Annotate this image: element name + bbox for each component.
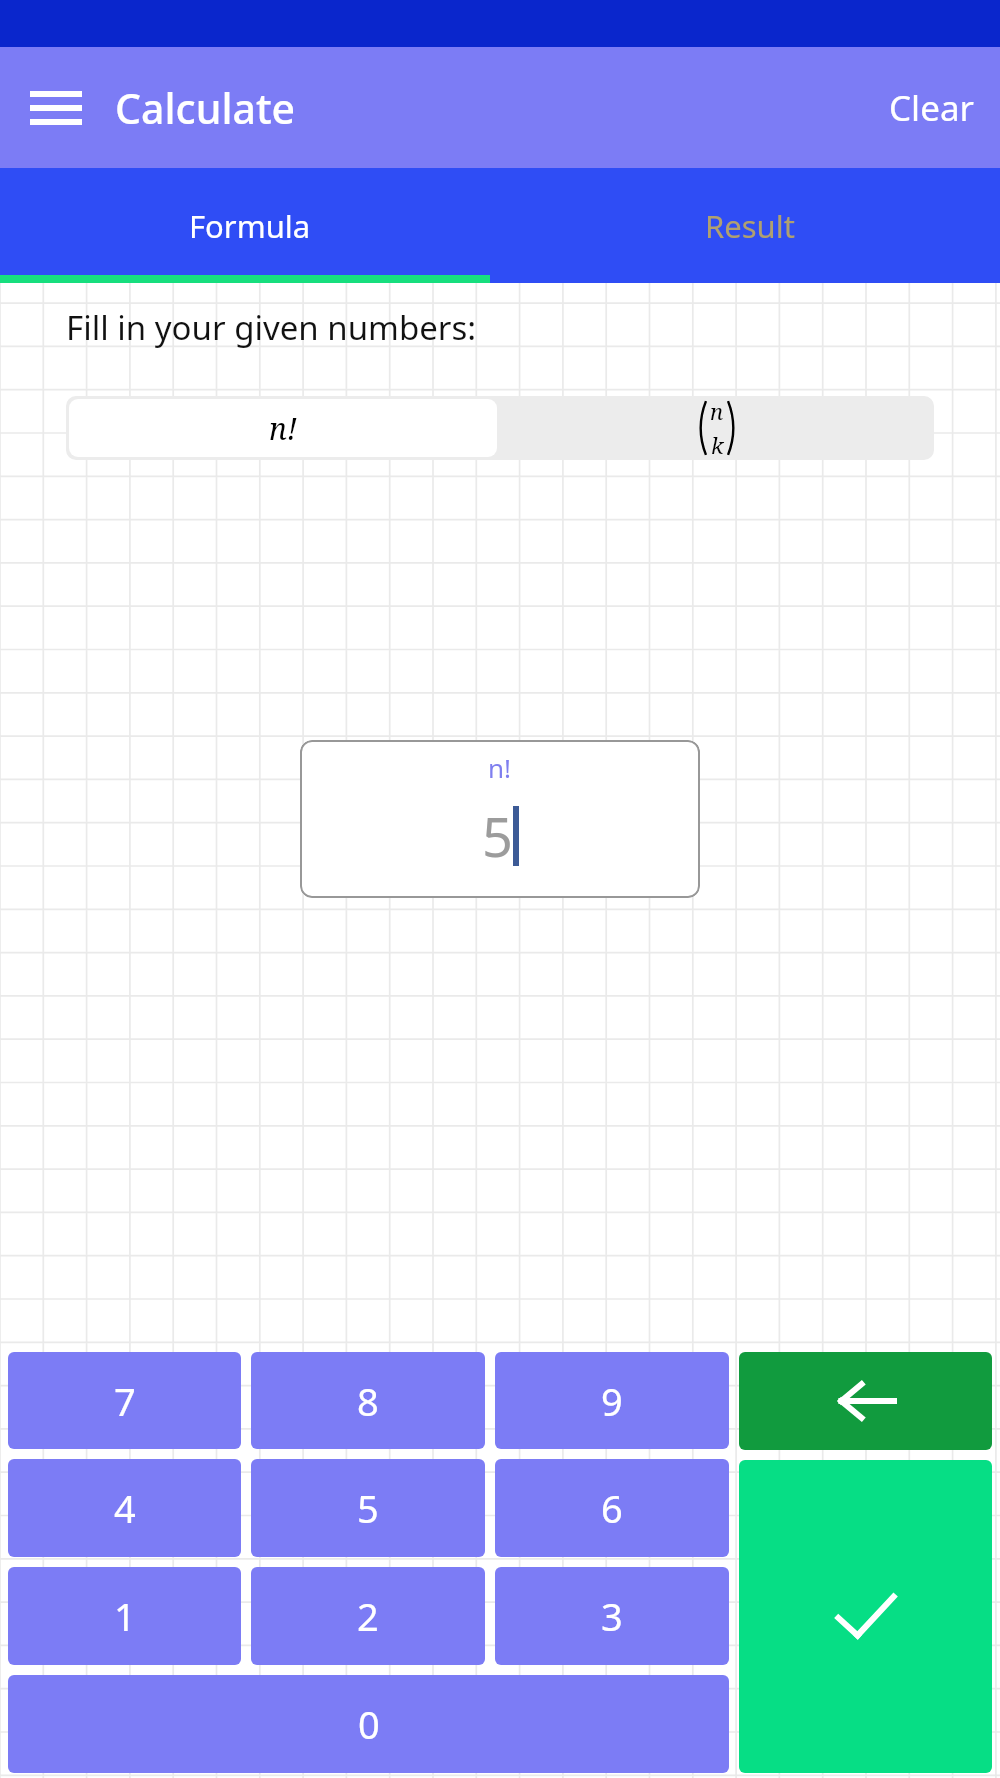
button[interactable]: 4 bbox=[8, 1459, 241, 1557]
button[interactable]: n bbox=[500, 396, 934, 460]
button[interactable]: 9 bbox=[495, 1352, 729, 1449]
button[interactable]: Open navigation menu bbox=[20, 72, 92, 144]
staticText: n! bbox=[488, 750, 512, 785]
staticText: 2 bbox=[357, 1590, 379, 1642]
staticText: Calculate bbox=[115, 80, 296, 136]
button[interactable]: Backspace bbox=[739, 1352, 992, 1450]
button[interactable]: Clear bbox=[863, 68, 1000, 148]
button[interactable]: n! bbox=[300, 740, 700, 898]
staticText: 4 bbox=[114, 1482, 136, 1534]
button[interactable]: 6 bbox=[495, 1459, 729, 1557]
staticText: Fill in your given numbers: bbox=[66, 305, 477, 350]
staticText: Clear bbox=[889, 84, 974, 132]
staticText: 3 bbox=[601, 1590, 623, 1642]
button[interactable]: 2 bbox=[251, 1567, 485, 1665]
staticText: 9 bbox=[601, 1375, 623, 1427]
button[interactable]: 5 bbox=[251, 1459, 485, 1557]
staticText: 8 bbox=[357, 1375, 379, 1427]
staticText: n! bbox=[269, 408, 297, 449]
button[interactable]: 0 bbox=[8, 1675, 729, 1773]
staticText: 5 bbox=[357, 1482, 379, 1534]
staticText: Formula bbox=[189, 205, 311, 247]
button[interactable]: Formula bbox=[0, 168, 500, 283]
staticText: 1 bbox=[114, 1590, 136, 1642]
button[interactable]: 7 bbox=[8, 1352, 241, 1449]
button[interactable]: n! bbox=[69, 399, 497, 457]
button[interactable]: 1 bbox=[8, 1567, 241, 1665]
staticText: 5 bbox=[482, 799, 513, 873]
button[interactable]: 3 bbox=[495, 1567, 729, 1665]
button[interactable]: Confirm bbox=[739, 1460, 992, 1773]
staticText: k bbox=[711, 430, 724, 460]
staticText: 0 bbox=[358, 1698, 380, 1750]
staticText: Result bbox=[705, 205, 795, 247]
button[interactable]: 8 bbox=[251, 1352, 485, 1449]
staticText: n bbox=[710, 396, 724, 426]
staticText: 6 bbox=[601, 1482, 623, 1534]
staticText: 7 bbox=[114, 1375, 136, 1427]
button[interactable]: Result bbox=[500, 168, 1000, 283]
